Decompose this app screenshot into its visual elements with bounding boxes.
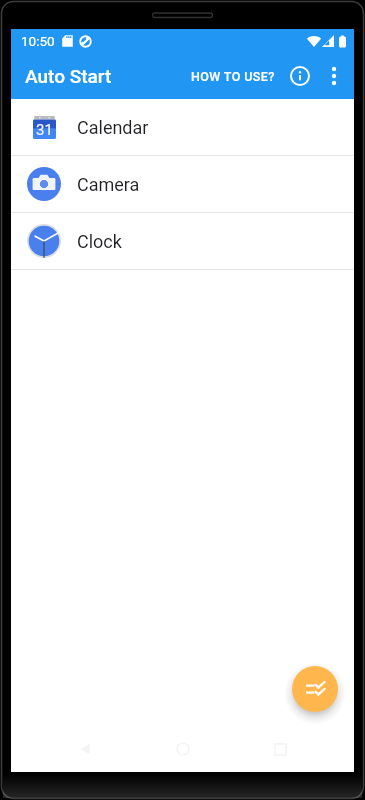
- button[interactable]: 31: [11, 99, 354, 155]
- staticText: Camera: [77, 174, 140, 195]
- staticText: 10:50: [21, 33, 55, 49]
- staticText: Auto Start: [25, 65, 112, 87]
- staticText: Calendar: [77, 117, 149, 138]
- button[interactable]: Select apps: [292, 666, 338, 712]
- button[interactable]: Info: [283, 59, 317, 93]
- staticText: Clock: [77, 231, 122, 252]
- button[interactable]: HOW TO USE?: [185, 59, 281, 94]
- staticText: 31: [36, 121, 53, 139]
- button[interactable]: More options: [317, 59, 351, 93]
- staticText: HOW TO USE?: [191, 69, 275, 84]
- button[interactable]: Camera: [11, 156, 354, 212]
- button[interactable]: Clock: [11, 213, 354, 269]
